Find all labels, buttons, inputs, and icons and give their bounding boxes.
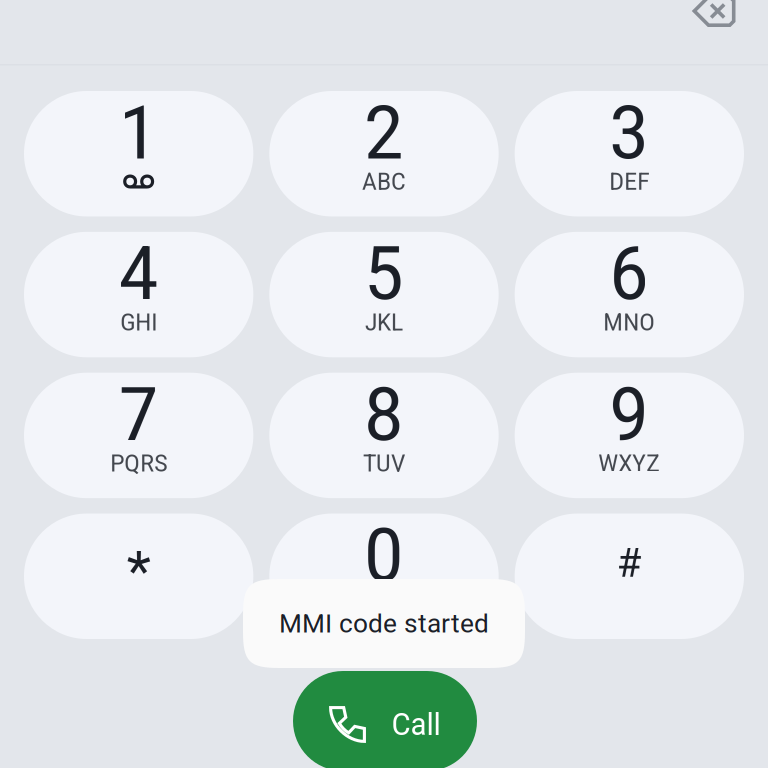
- staticText: ABC: [362, 167, 406, 195]
- staticText: 9: [609, 371, 649, 458]
- button[interactable]: *: [24, 513, 253, 639]
- staticText: #: [617, 540, 642, 586]
- staticText: 1: [119, 89, 159, 177]
- staticText: 6: [609, 230, 649, 318]
- staticText: PQRS: [110, 449, 167, 477]
- staticText: 7: [119, 371, 159, 458]
- button[interactable]: Delete: [692, 0, 735, 27]
- button[interactable]: 1: [24, 91, 253, 216]
- button[interactable]: #: [515, 513, 744, 639]
- button[interactable]: 0: [269, 513, 499, 639]
- staticText: 0: [364, 512, 404, 599]
- staticText: Call: [391, 706, 440, 742]
- button[interactable]: 4: [24, 232, 253, 357]
- staticText: 4: [119, 230, 159, 318]
- button[interactable]: 6: [515, 232, 744, 357]
- staticText: TUV: [363, 449, 405, 477]
- staticText: 8: [364, 371, 404, 458]
- button[interactable]: 7: [24, 373, 253, 498]
- staticText: +: [377, 590, 390, 618]
- staticText: 3: [609, 89, 649, 177]
- button[interactable]: 5: [269, 232, 499, 357]
- button[interactable]: 8: [269, 373, 499, 498]
- staticText: MMI code started: [279, 608, 489, 639]
- staticText: GHI: [120, 308, 157, 336]
- button[interactable]: 9: [515, 373, 744, 498]
- button[interactable]: 3: [515, 91, 744, 216]
- staticText: 5: [364, 230, 404, 318]
- staticText: 2: [364, 89, 404, 177]
- staticText: MNO: [603, 308, 655, 336]
- button[interactable]: 2: [269, 91, 499, 216]
- staticText: DEF: [609, 167, 649, 195]
- button[interactable]: Call: [293, 671, 477, 768]
- staticText: WXYZ: [598, 449, 660, 477]
- staticText: JKL: [365, 308, 403, 336]
- staticText: *: [127, 539, 151, 604]
